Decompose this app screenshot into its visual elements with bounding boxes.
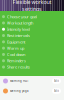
staticText: Evening yoga xyxy=(10,89,28,93)
staticText: Intensity level xyxy=(7,27,30,32)
button[interactable]: Rest intervals xyxy=(0,32,64,39)
button[interactable]: Reminders xyxy=(0,58,64,64)
button[interactable]: Intensity level xyxy=(0,26,64,32)
staticText: Workout length xyxy=(7,20,33,26)
button[interactable]: Cool down xyxy=(0,51,64,58)
staticText: Warm up xyxy=(7,45,24,51)
staticText: Cool down xyxy=(7,52,25,57)
staticText: Equipment xyxy=(7,39,25,44)
staticText: Edit xyxy=(54,89,59,93)
button[interactable]: Share results xyxy=(0,64,64,70)
button[interactable]: Workout length xyxy=(0,20,64,26)
staticText: Reminders xyxy=(7,58,26,63)
button[interactable]: Equipment xyxy=(0,39,64,45)
staticText: Morning HIIT xyxy=(10,79,28,83)
button[interactable]: Warm up xyxy=(0,45,64,51)
staticText: Edit xyxy=(54,79,59,83)
button[interactable]: Evening yoga xyxy=(0,86,64,96)
staticText: Rest intervals xyxy=(7,33,30,38)
button[interactable]: Morning HIIT xyxy=(0,76,64,86)
staticText: Share results xyxy=(7,64,30,70)
staticText: settings xyxy=(22,5,42,13)
button[interactable]: Choose your goal xyxy=(0,13,64,20)
staticText: Flexible workout xyxy=(12,0,51,5)
staticText: Choose your goal xyxy=(7,14,37,19)
